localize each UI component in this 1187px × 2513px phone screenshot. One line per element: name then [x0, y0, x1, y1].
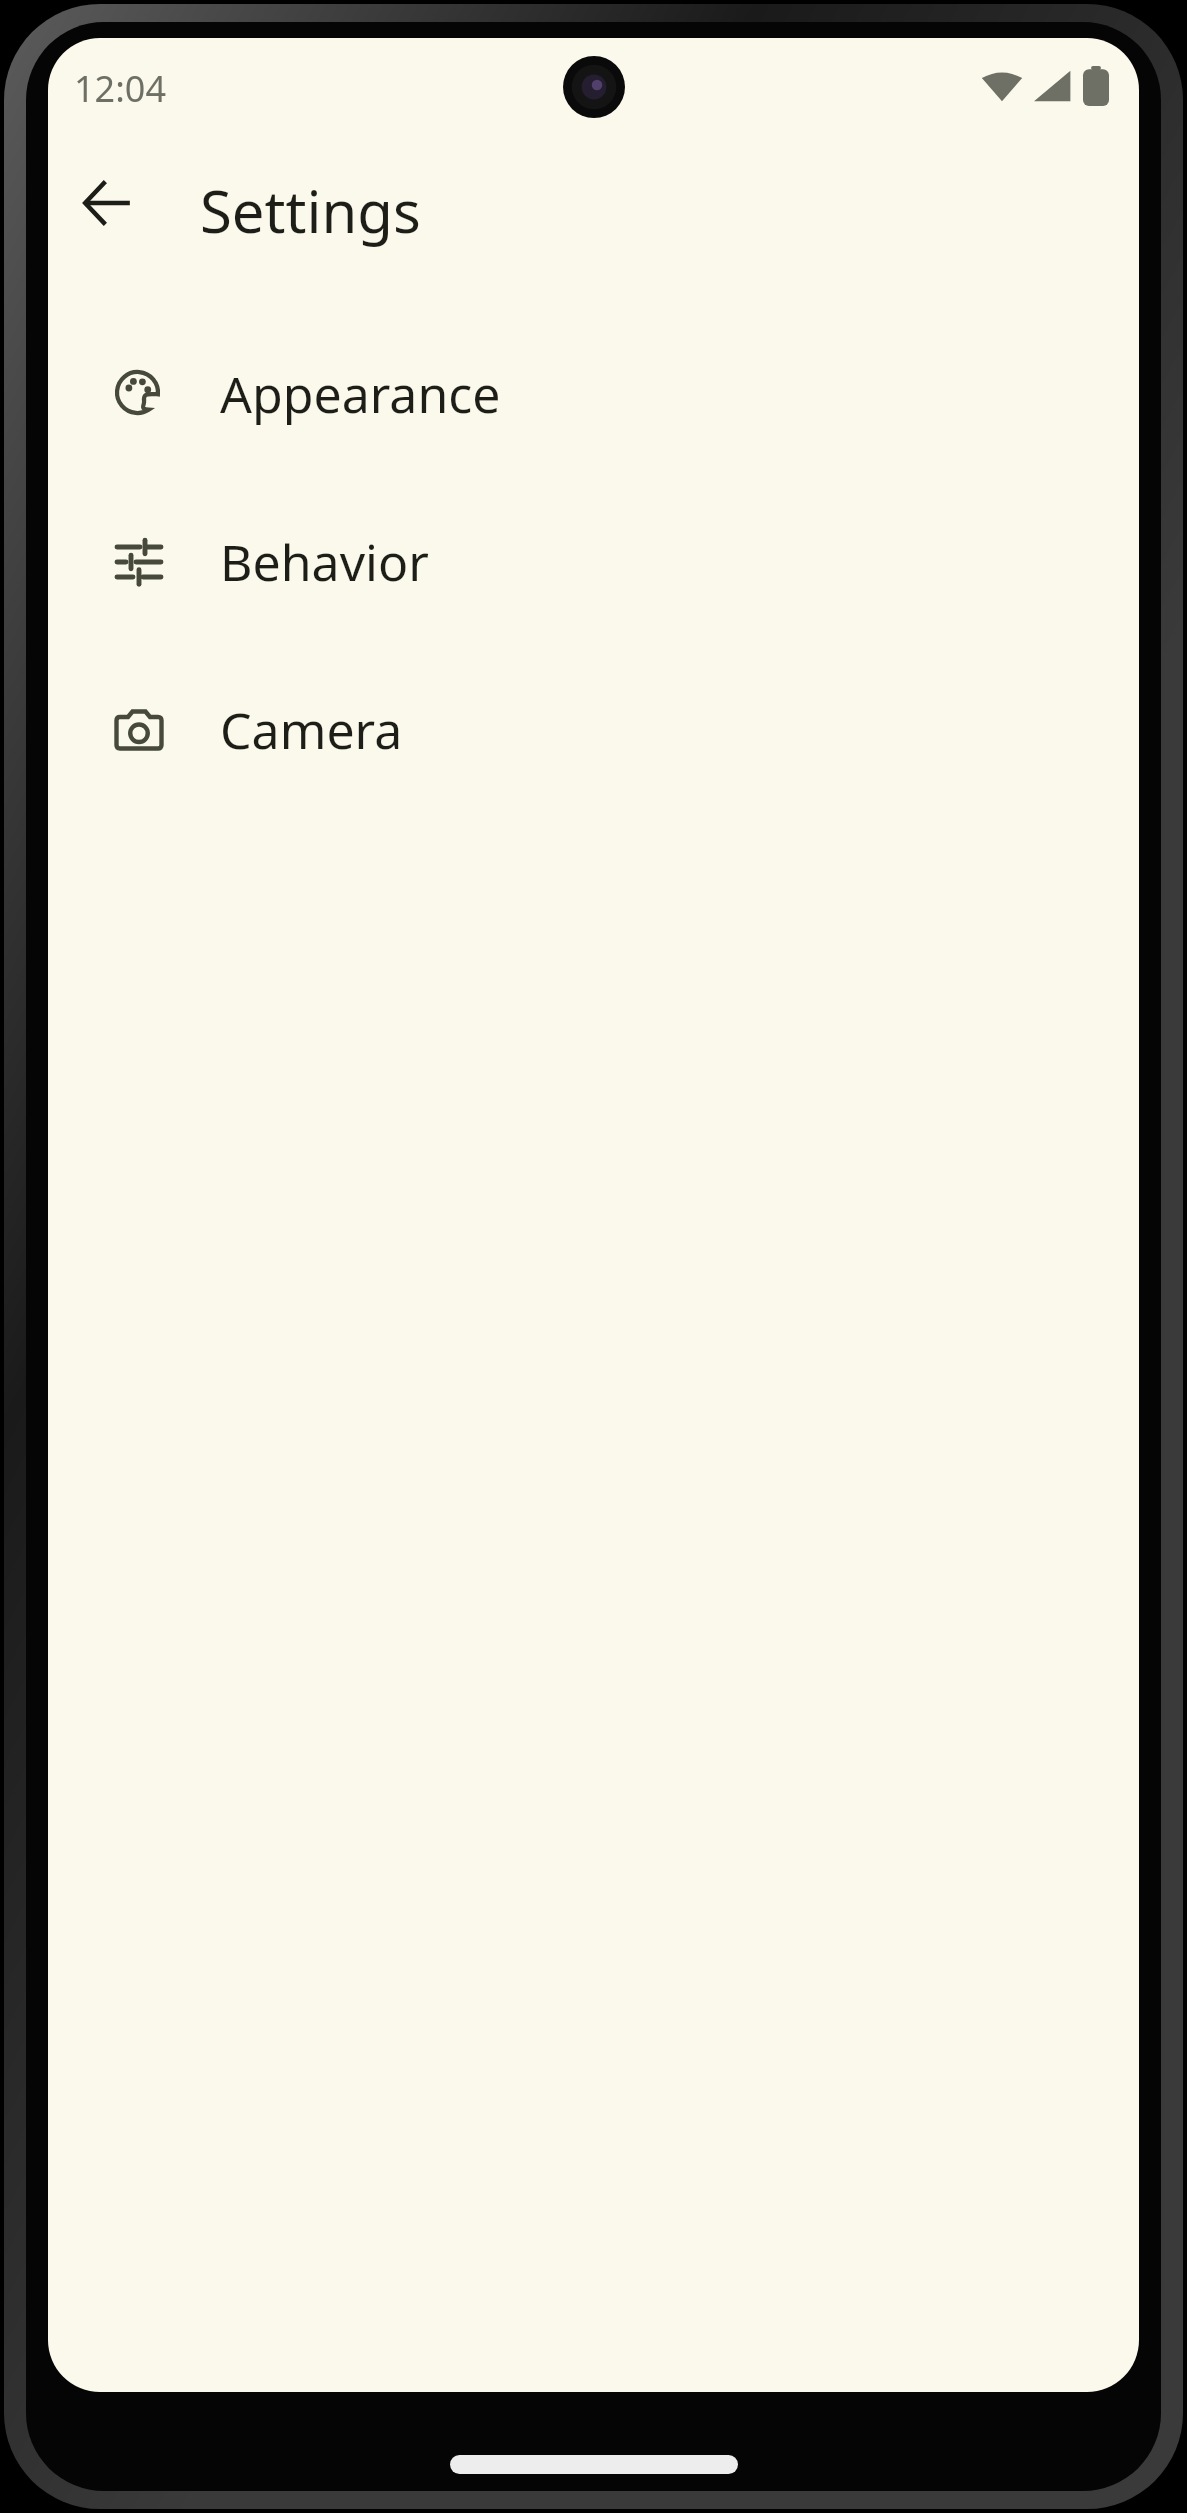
button[interactable]: Behavior	[48, 478, 1139, 646]
staticText: Camera	[220, 696, 403, 764]
button[interactable]: Back	[62, 157, 154, 249]
button[interactable]: Appearance	[48, 310, 1139, 478]
staticText: Behavior	[220, 528, 429, 596]
button[interactable]: Camera	[48, 646, 1139, 814]
staticText: Appearance	[220, 360, 501, 428]
staticText: 12:04	[74, 64, 167, 113]
staticText: Settings	[200, 171, 421, 250]
